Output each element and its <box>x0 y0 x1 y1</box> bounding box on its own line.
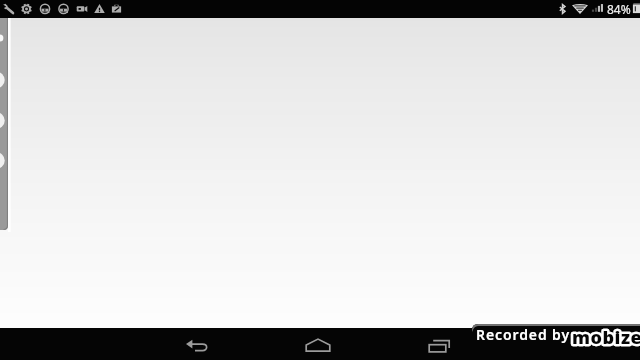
button[interactable]: Home <box>297 328 339 360</box>
button[interactable]: Recent apps <box>418 328 460 360</box>
staticText: 84% <box>607 1 631 17</box>
staticText: mobizen <box>572 325 640 350</box>
button[interactable]: Back <box>177 328 219 360</box>
button[interactable]: Recorded by <box>472 324 640 360</box>
staticText: mobizen <box>572 325 640 350</box>
button[interactable] <box>0 18 13 230</box>
staticText: Recorded by <box>476 325 571 344</box>
